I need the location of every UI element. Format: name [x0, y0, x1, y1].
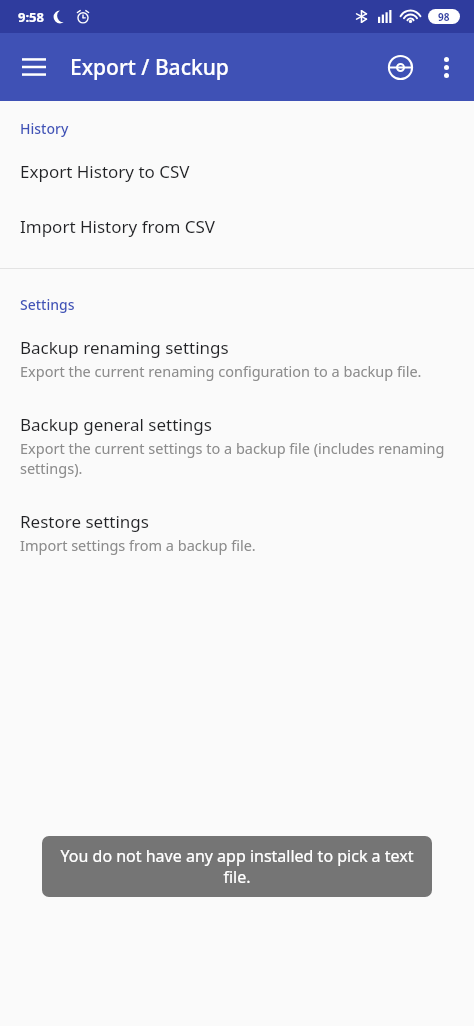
button[interactable]: Backup general settings	[0, 397, 474, 494]
button[interactable]: Restore settings	[0, 494, 474, 571]
staticText: Import History from CSV	[20, 215, 216, 238]
staticText: Backup renaming settings	[20, 336, 229, 359]
button[interactable]: Open navigation menu	[10, 43, 58, 91]
staticText: Export the current renaming configuratio…	[20, 361, 422, 381]
staticText: Restore settings	[20, 510, 149, 533]
staticText: 9:58	[18, 8, 44, 26]
staticText: Export History to CSV	[20, 160, 190, 183]
button[interactable]: Import History from CSV	[0, 199, 474, 254]
button[interactable]: Theme	[376, 43, 424, 91]
staticText: Import settings from a backup file.	[20, 535, 256, 555]
staticText: 98	[438, 10, 450, 24]
staticText: You do not have any app installed to pic…	[58, 845, 416, 888]
button[interactable]: More options	[424, 45, 468, 89]
staticText: Export the current settings to a backup …	[20, 438, 454, 478]
staticText: Backup general settings	[20, 413, 212, 436]
staticText: Settings	[20, 295, 75, 314]
button[interactable]: Backup renaming settings	[0, 320, 474, 397]
staticText: Export / Backup	[70, 53, 229, 82]
button[interactable]: Export History to CSV	[0, 144, 474, 199]
staticText: History	[20, 119, 69, 138]
